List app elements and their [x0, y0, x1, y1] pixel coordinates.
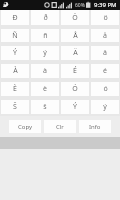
button[interactable]: Š [1, 100, 29, 114]
button[interactable]: é [91, 64, 119, 78]
button[interactable]: Clr [44, 120, 76, 133]
staticText: À [13, 66, 18, 76]
button[interactable]: À [1, 64, 29, 78]
staticText: Ö [72, 13, 78, 23]
staticText: ñ [43, 31, 48, 41]
button[interactable]: Ð [1, 10, 29, 25]
staticText: 60% [75, 2, 85, 9]
button[interactable]: É [61, 64, 89, 78]
button[interactable]: È [1, 82, 29, 96]
staticText: š [43, 102, 47, 112]
staticText: È [13, 84, 17, 94]
staticText: Š [13, 102, 17, 112]
button[interactable]: Ä [61, 46, 89, 60]
staticText: ó [103, 84, 108, 94]
button[interactable]: Ý [61, 100, 89, 114]
staticText: ð [43, 13, 48, 23]
button[interactable]: ý [91, 100, 119, 114]
staticText: é [103, 66, 107, 76]
button[interactable]: ñ [31, 29, 59, 42]
staticText: Copy [18, 123, 33, 131]
button[interactable]: ý [31, 46, 59, 60]
button[interactable]: ö [91, 10, 119, 25]
button[interactable]: å [91, 29, 119, 42]
button[interactable]: Ñ [1, 29, 29, 42]
staticText: Ó [72, 84, 78, 94]
staticText: Info [89, 123, 101, 131]
staticText: ý [103, 102, 107, 112]
staticText: Ý [73, 102, 77, 112]
button[interactable]: Ö [61, 10, 89, 25]
button[interactable]: Ý [1, 46, 29, 60]
button[interactable]: Ó [61, 82, 89, 96]
staticText: Ð [12, 13, 18, 23]
button[interactable]: ó [91, 82, 119, 96]
staticText: è [43, 84, 47, 94]
staticText: å [103, 31, 107, 41]
staticText: 9:39 PM [94, 1, 117, 9]
button[interactable]: Å [61, 29, 89, 42]
button[interactable]: ä [91, 46, 119, 60]
button[interactable]: à [31, 64, 59, 78]
button[interactable]: ð [31, 10, 59, 25]
staticText: Ä [73, 48, 78, 58]
staticText: ä [103, 48, 107, 58]
staticText: Ñ [12, 31, 18, 41]
button[interactable]: Copy [9, 120, 41, 133]
button[interactable]: è [31, 82, 59, 96]
staticText: Clr [56, 123, 64, 131]
button[interactable]: š [31, 100, 59, 114]
staticText: Å [73, 31, 78, 41]
button[interactable]: Info [79, 120, 111, 133]
staticText: ý [43, 48, 47, 58]
staticText: ö [103, 13, 108, 23]
staticText: Ý [13, 48, 17, 58]
staticText: à [43, 66, 47, 76]
staticText: É [73, 66, 77, 76]
